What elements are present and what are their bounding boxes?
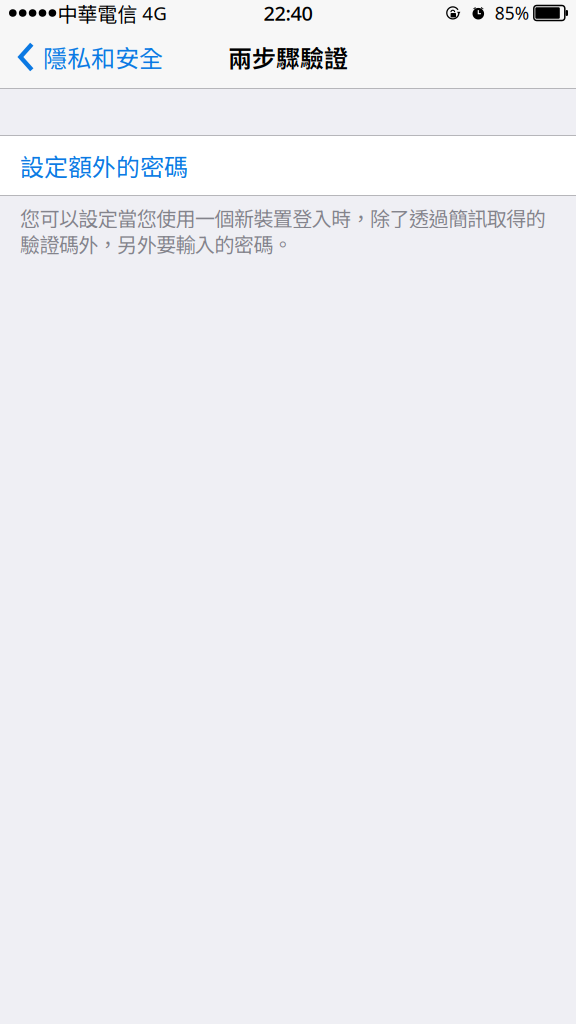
staticText: 您可以設定當您使用一個新裝置登入時，除了透過簡訊取得的驗證碼外，另外要輸入的密碼… (20, 203, 546, 258)
staticText: 22:40 (263, 0, 312, 26)
staticText: 隱私和安全 (43, 40, 163, 74)
staticText: 4G (142, 1, 167, 25)
staticText: 中華電信 (57, 0, 137, 27)
button[interactable]: 設定額外的密碼 (0, 136, 576, 195)
staticText: 設定額外的密碼 (20, 148, 188, 183)
staticText: 85% (495, 1, 529, 24)
button[interactable]: 隱私和安全 (0, 26, 173, 88)
staticText: 兩步驟驗證 (228, 40, 348, 74)
